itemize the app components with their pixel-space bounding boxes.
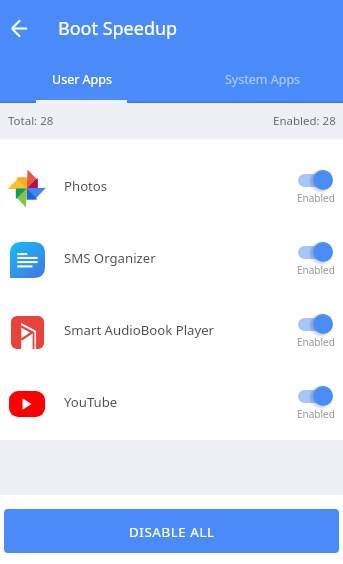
staticText: Photos bbox=[64, 177, 288, 195]
staticText: Enabled bbox=[297, 407, 335, 421]
staticText: Total: 28 bbox=[8, 113, 54, 129]
button[interactable]: Toggle enabled bbox=[298, 314, 333, 334]
staticText: User Apps bbox=[52, 71, 112, 88]
button[interactable]: Toggle enabled bbox=[298, 170, 333, 190]
button[interactable]: YouTube bbox=[0, 366, 343, 438]
button[interactable]: System Apps bbox=[217, 56, 308, 103]
button[interactable]: DISABLE ALL bbox=[4, 509, 339, 553]
button[interactable]: SMS Organizer bbox=[0, 222, 343, 294]
staticText: DISABLE ALL bbox=[129, 523, 215, 541]
staticText: Boot Speedup bbox=[58, 16, 178, 41]
staticText: YouTube bbox=[64, 393, 288, 411]
staticText: Smart AudioBook Player bbox=[64, 321, 288, 339]
staticText: Enabled: 28 bbox=[273, 113, 336, 129]
button[interactable]: Smart AudioBook Player bbox=[0, 294, 343, 366]
staticText: System Apps bbox=[225, 71, 301, 88]
button[interactable]: Photos bbox=[0, 150, 343, 222]
staticText: SMS Organizer bbox=[64, 249, 288, 267]
button[interactable]: User Apps bbox=[36, 56, 127, 103]
button[interactable]: Toggle enabled bbox=[298, 242, 333, 262]
staticText: Enabled bbox=[297, 191, 335, 205]
button[interactable]: Back bbox=[0, 0, 39, 56]
button[interactable]: Toggle enabled bbox=[298, 386, 333, 406]
staticText: Enabled bbox=[297, 335, 335, 349]
staticText: Enabled bbox=[297, 263, 335, 277]
